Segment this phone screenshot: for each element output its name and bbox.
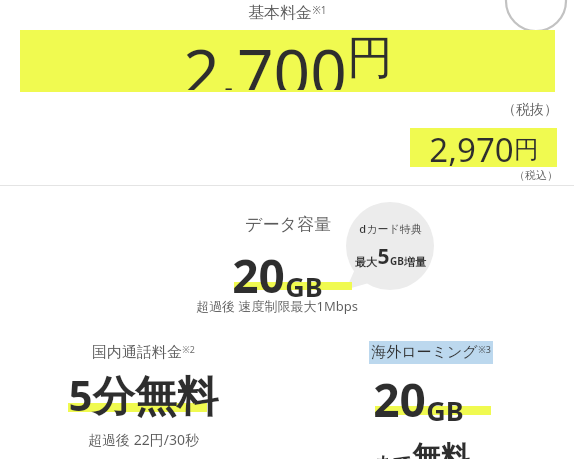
- staticText: （税込）: [514, 168, 558, 182]
- staticText: 20: [232, 244, 285, 307]
- staticText: 超過後 速度制限最大1Mbps: [196, 297, 358, 315]
- staticText: GB: [426, 392, 464, 429]
- staticText: 国内通話料金: [92, 343, 182, 362]
- button[interactable]: 2,700: [20, 30, 555, 92]
- staticText: 円: [514, 134, 539, 165]
- staticText: 2,970: [429, 127, 514, 166]
- staticText: データ容量: [245, 214, 331, 235]
- staticText: 超過後 22円/30秒: [88, 430, 199, 449]
- staticText: GB: [285, 268, 323, 305]
- staticText: 5: [377, 242, 390, 271]
- other: dカード特典 最大5GB増量: [346, 202, 434, 290]
- staticText: 海外ローミング: [371, 343, 478, 362]
- staticText: 増量: [404, 255, 426, 269]
- staticText: まで: [373, 452, 412, 459]
- staticText: ※2: [182, 343, 195, 355]
- button[interactable]: 2,970: [410, 128, 557, 167]
- staticText: 20: [373, 368, 426, 431]
- staticText: 5分無料: [68, 366, 219, 423]
- staticText: ※3: [478, 343, 491, 355]
- staticText: dカード特典: [359, 221, 422, 236]
- staticText: ※1: [312, 3, 327, 17]
- staticText: 無料: [412, 439, 470, 459]
- staticText: 2,700: [183, 28, 347, 90]
- staticText: 円: [347, 29, 393, 87]
- staticText: GB: [390, 254, 404, 268]
- staticText: （税抜）: [502, 101, 558, 119]
- staticText: 基本料金: [248, 3, 312, 23]
- staticText: 最大: [355, 255, 377, 269]
